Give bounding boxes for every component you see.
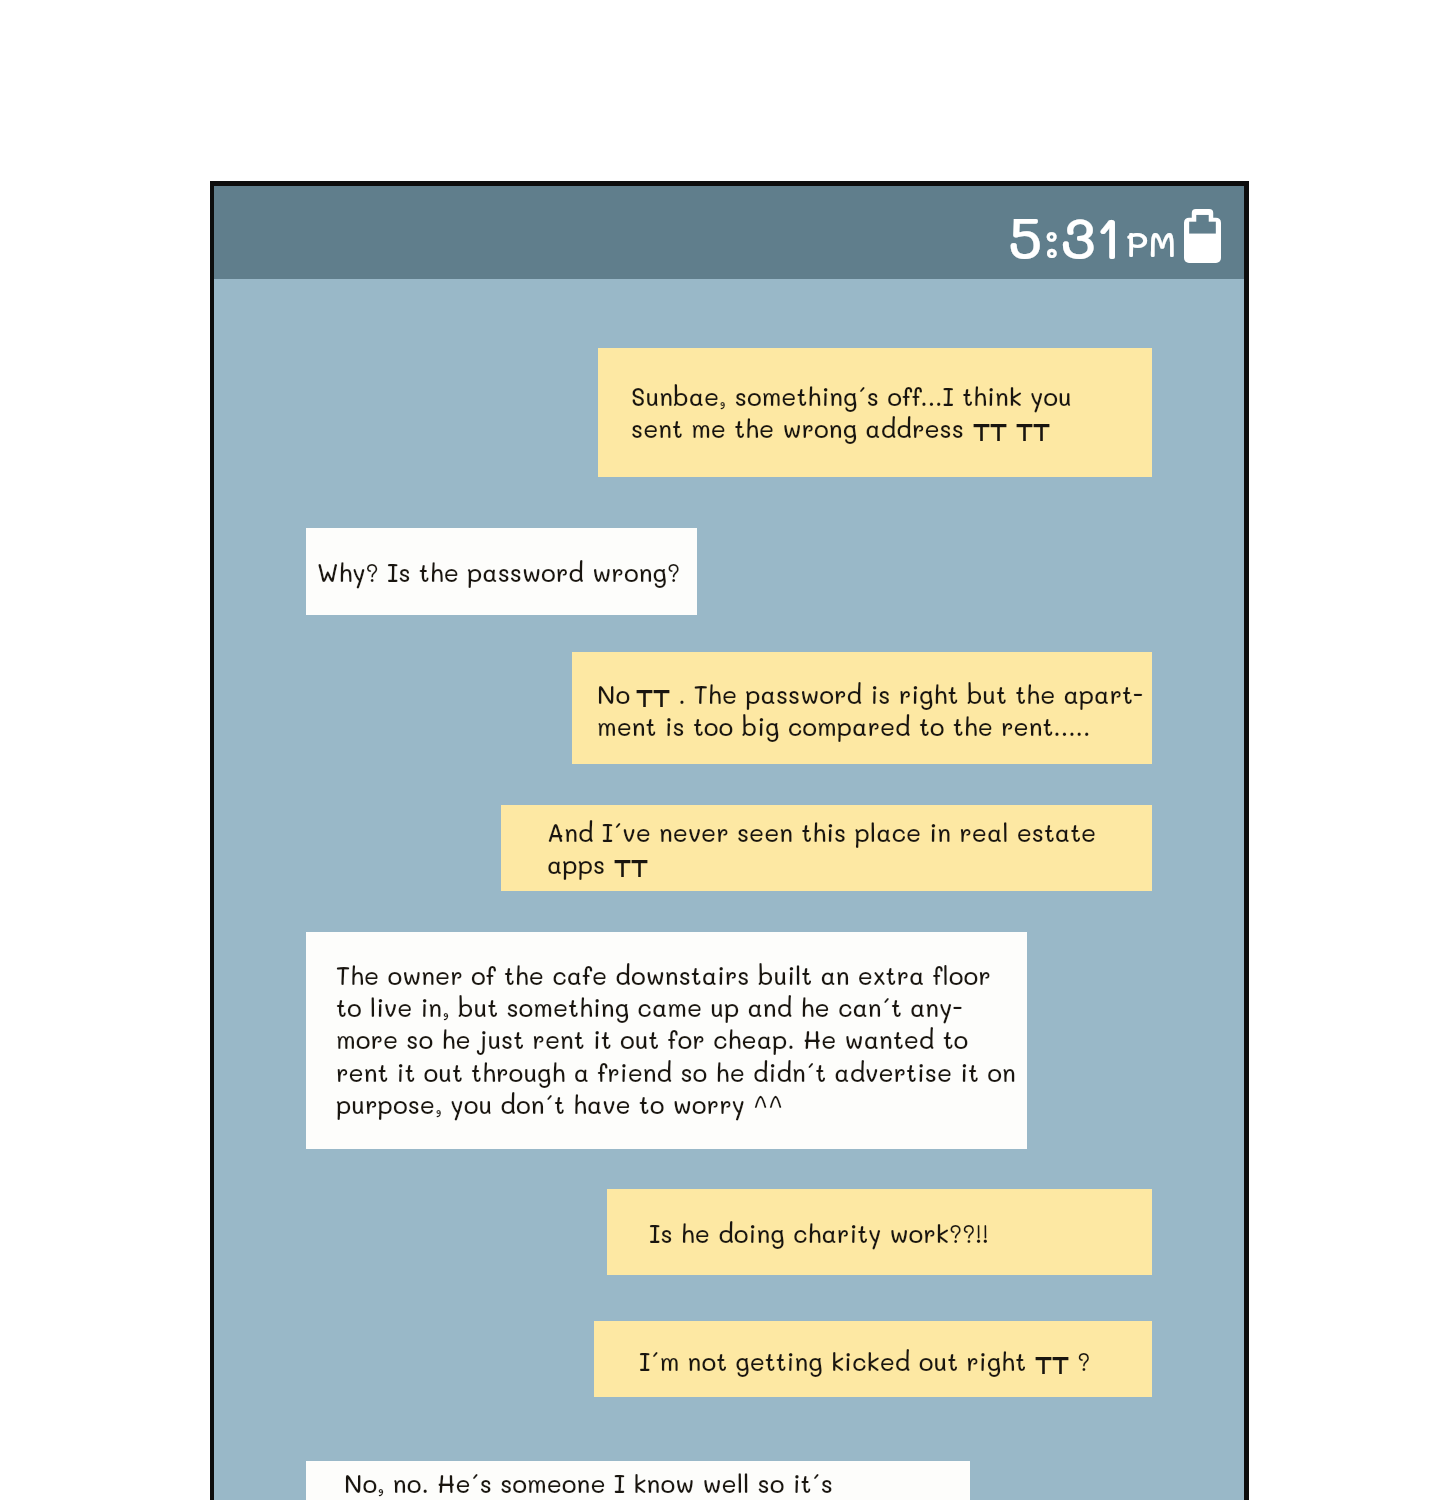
other: crying emoticon	[973, 424, 1007, 441]
staticText: I´m not getting kicked out right	[639, 1345, 1035, 1377]
staticText: apps	[547, 848, 614, 880]
staticText: Sunbae, something´s off...I think you	[631, 380, 1072, 412]
staticText: The owner of the cafe downstairs built a…	[336, 959, 991, 991]
staticText: Is he doing charity work??!!	[649, 1217, 989, 1249]
other: crying emoticon	[1035, 1357, 1069, 1374]
button[interactable]: I´m not getting kicked out right	[594, 1321, 1152, 1397]
button[interactable]: The owner of the cafe downstairs built a…	[306, 932, 1027, 1149]
staticText: And I´ve never seen this place in real e…	[547, 816, 1097, 848]
staticText: 5:31	[1008, 197, 1122, 274]
staticText: . The password is right but the apart-	[670, 678, 1144, 710]
staticText: to live in, but something came up and he…	[336, 991, 963, 1023]
staticText: No	[597, 678, 631, 710]
button[interactable]: Sunbae, something´s off...I think you	[598, 348, 1152, 477]
staticText: rent it out through a friend so he didn´…	[336, 1056, 1016, 1088]
other: crying emoticon	[614, 860, 648, 877]
other: Battery	[1184, 209, 1221, 263]
button[interactable]: Why? Is the password wrong?	[306, 528, 697, 615]
button[interactable]: No, no. He´s someone I know well so it´s	[306, 1461, 970, 1500]
staticText: No, no. He´s someone I know well so it´s	[344, 1467, 833, 1499]
staticText: PM	[1126, 220, 1177, 266]
button[interactable]: Is he doing charity work??!!	[607, 1189, 1152, 1275]
staticText: purpose, you don´t have to worry ^^	[336, 1088, 784, 1120]
staticText: Why? Is the password wrong?	[317, 556, 681, 588]
staticText: more so he just rent it out for cheap. H…	[336, 1023, 969, 1055]
staticText: sent me the wrong address	[631, 412, 973, 444]
other: crying emoticon	[1016, 424, 1050, 441]
other: crying emoticon	[636, 690, 670, 707]
staticText: ?	[1069, 1345, 1091, 1377]
button[interactable]: And I´ve never seen this place in real e…	[501, 805, 1152, 891]
button[interactable]: No	[572, 652, 1152, 764]
staticText: ment is too big compared to the rent....…	[597, 710, 1091, 742]
